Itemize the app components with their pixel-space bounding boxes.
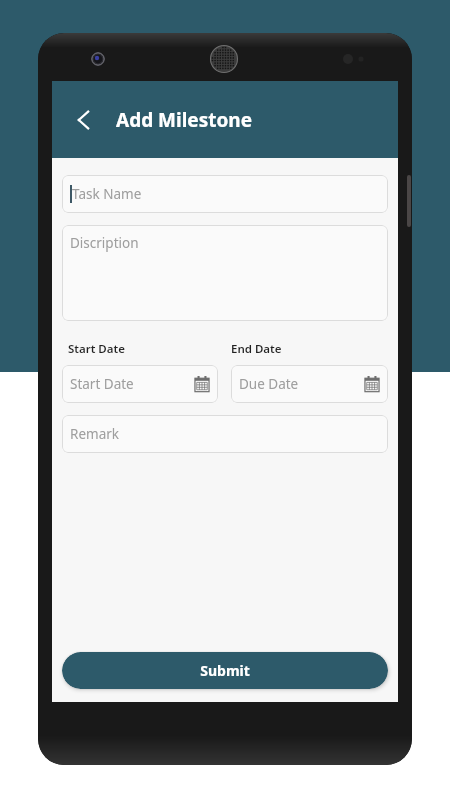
button[interactable]: Start Date <box>62 365 218 403</box>
other: Pick date <box>194 376 210 392</box>
staticText: Add Milestone <box>116 107 253 133</box>
other: Pick date <box>364 376 380 392</box>
button[interactable]: Task Name <box>62 175 388 213</box>
button[interactable]: Submit <box>62 652 388 689</box>
button[interactable]: Discription <box>62 225 388 321</box>
staticText: Due Date <box>239 375 364 393</box>
staticText: Discription <box>70 234 139 252</box>
staticText: Task Name <box>72 185 142 203</box>
button[interactable]: Due Date <box>231 365 388 403</box>
button[interactable]: Remark <box>62 415 388 453</box>
staticText: Submit <box>200 661 250 680</box>
button[interactable]: Back <box>62 98 106 142</box>
staticText: End Date <box>231 341 282 357</box>
staticText: Start Date <box>70 375 194 393</box>
staticText: Start Date <box>68 341 125 357</box>
staticText: Remark <box>70 425 119 443</box>
